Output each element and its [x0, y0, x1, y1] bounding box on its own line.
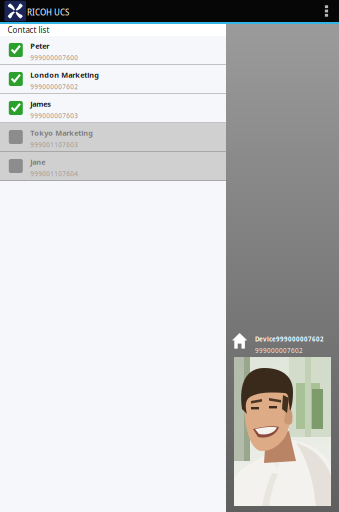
staticText: Device999000007602 [255, 335, 324, 343]
button[interactable]: Peter [0, 36, 226, 65]
staticText: 999000007602 [30, 82, 78, 91]
staticText: London Marketing [30, 70, 99, 80]
button[interactable]: Tokyo Marketing [0, 123, 226, 152]
button[interactable]: James [0, 94, 226, 123]
button[interactable]: More options [314, 0, 339, 22]
staticText: 999001107604 [30, 169, 78, 178]
staticText: Peter [30, 41, 49, 51]
staticText: 999000007603 [30, 111, 78, 120]
staticText: Tokyo Marketing [30, 128, 93, 138]
button[interactable]: RICOH UCS [0, 1, 26, 21]
staticText: 999000007600 [30, 53, 78, 62]
staticText: RICOH UCS [27, 7, 69, 18]
button[interactable]: Jane [0, 152, 226, 181]
staticText: James [30, 99, 51, 109]
staticText: 999000007602 [255, 346, 303, 355]
button[interactable]: London Marketing [0, 65, 226, 94]
staticText: Jane [30, 157, 45, 167]
staticText: Contact list [7, 25, 49, 35]
staticText: 999001107603 [30, 140, 78, 149]
